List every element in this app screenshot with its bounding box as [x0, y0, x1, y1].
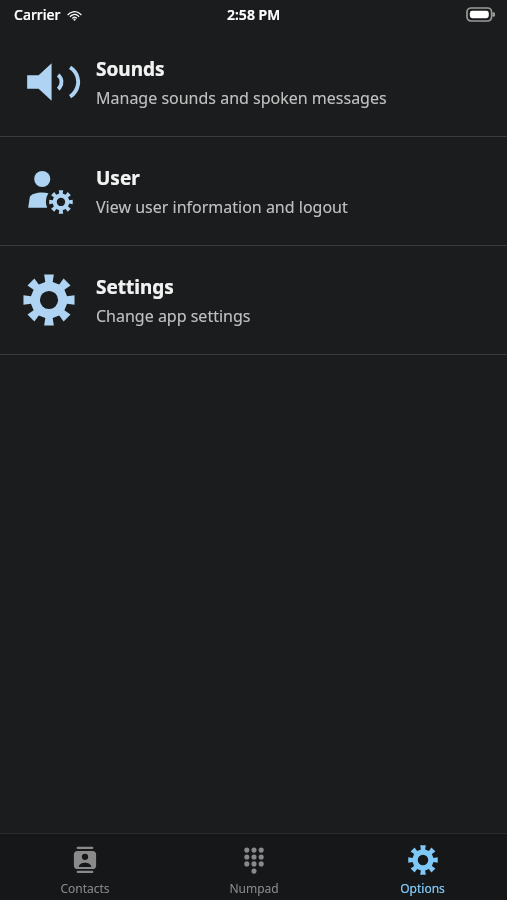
staticText: Numpad	[229, 880, 279, 896]
button[interactable]: Settings	[0, 246, 507, 354]
button[interactable]: Contacts	[0, 834, 169, 900]
other: Numpad	[239, 845, 269, 875]
staticText: Change app settings	[96, 305, 251, 327]
staticText: View user information and logout	[96, 196, 348, 218]
button[interactable]: User	[0, 137, 507, 245]
staticText: Options	[400, 880, 445, 896]
staticText: Sounds	[96, 56, 165, 82]
staticText: Contacts	[60, 880, 110, 896]
staticText: Settings	[96, 274, 174, 300]
button[interactable]: Numpad	[169, 834, 338, 900]
button[interactable]: Sounds	[0, 28, 507, 136]
button[interactable]: Options	[338, 834, 507, 900]
staticText: Carrier	[14, 5, 61, 24]
staticText: User	[96, 165, 140, 191]
staticText: 2:58 PM	[227, 5, 281, 24]
staticText: Manage sounds and spoken messages	[96, 87, 387, 109]
other: Contacts	[70, 845, 100, 875]
